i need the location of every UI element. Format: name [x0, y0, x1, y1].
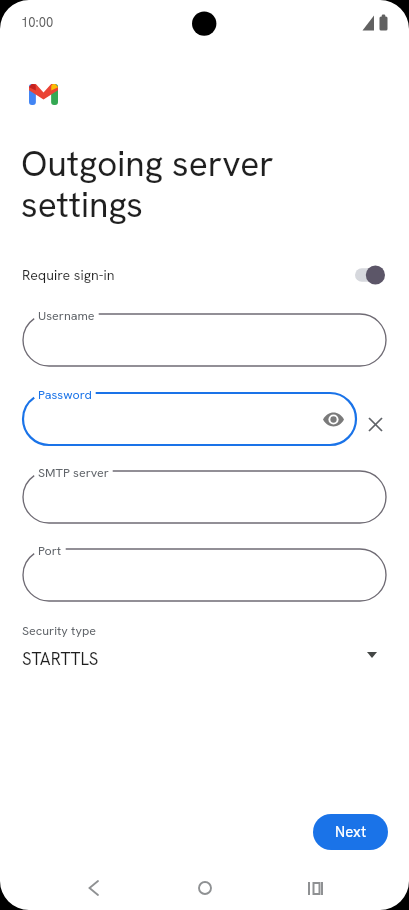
staticText: STARTTLS — [22, 648, 99, 670]
button[interactable]: Port — [23, 549, 386, 601]
staticText: Security type — [22, 622, 97, 638]
staticText: 10:00 — [21, 14, 54, 31]
button[interactable]: Password — [23, 393, 356, 445]
button[interactable]: Next — [313, 814, 388, 850]
button[interactable]: Clear — [361, 410, 390, 439]
staticText: Outgoing server settings — [21, 141, 274, 227]
button[interactable]: SMTP server — [23, 471, 386, 523]
staticText: SMTP server — [38, 464, 109, 480]
button[interactable]: Require sign-in — [0, 258, 409, 292]
button[interactable]: Back — [69, 864, 117, 910]
button[interactable]: Home — [181, 864, 229, 910]
button[interactable]: Recent apps — [291, 864, 339, 910]
button[interactable]: Security type — [0, 620, 409, 674]
staticText: Next — [335, 822, 367, 842]
staticText: Require sign-in — [22, 266, 115, 285]
staticText: Port — [38, 542, 62, 558]
button[interactable]: Username — [23, 314, 386, 366]
staticText: Password — [38, 386, 92, 402]
button[interactable]: Show password — [320, 406, 346, 432]
staticText: Username — [38, 307, 95, 323]
